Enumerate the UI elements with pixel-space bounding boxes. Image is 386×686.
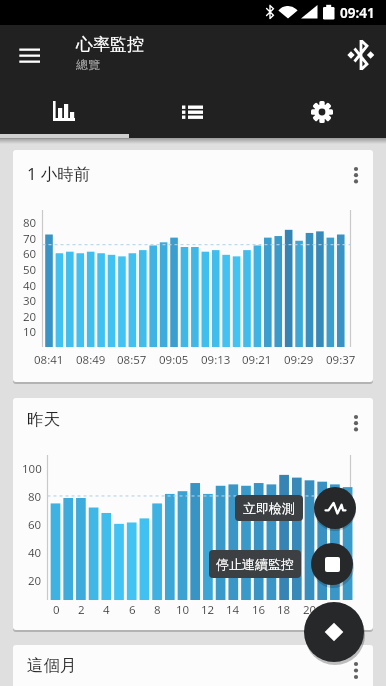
staticText: 14 [226,602,240,616]
button[interactable] [311,543,353,585]
staticText: 40 [23,278,37,292]
staticText: 50 [23,262,37,276]
staticText: 12 [201,602,215,616]
staticText: 停止連續監控 [216,556,294,572]
button[interactable] [0,85,128,138]
button[interactable] [257,85,386,138]
staticText: 4 [103,602,110,616]
staticText: 18 [277,602,291,616]
staticText: 20 [28,573,42,587]
staticText: 60 [28,517,42,531]
staticText: 100 [22,461,42,475]
staticText: 1 小時前 [27,162,91,185]
staticText: 60 [23,246,37,260]
staticText: 40 [28,545,42,559]
button[interactable] [304,602,364,662]
staticText: 6 [129,602,136,616]
staticText: 08:41 [34,352,64,366]
staticText: 80 [28,489,42,503]
button[interactable] [8,44,52,66]
staticText: 16 [252,602,266,616]
staticText: 30 [23,293,37,307]
button[interactable] [344,157,368,187]
staticText: 09:21 [242,352,272,366]
staticText: 08:57 [117,352,147,366]
staticText: 80 [23,215,37,229]
staticText: 這個月 [27,655,77,676]
button[interactable] [340,34,382,76]
staticText: 立即檢測 [243,500,295,516]
staticText: 09:37 [326,352,356,366]
staticText: 8 [154,602,161,616]
button[interactable] [344,405,368,435]
staticText: 20 [23,309,37,323]
staticText: 0 [53,602,60,616]
staticText: 10 [23,324,37,338]
staticText: 10 [176,602,190,616]
staticText: 2 [78,602,85,616]
staticText: 心率監控 [76,34,144,55]
staticText: 09:13 [201,352,231,366]
staticText: 70 [23,231,37,245]
staticText: 09:41 [340,4,375,21]
button[interactable] [314,487,356,529]
button[interactable]: 立即檢測 [235,495,303,521]
staticText: 總覽 [76,57,100,72]
staticText: 22 [328,602,342,616]
staticText: 08:49 [76,352,106,366]
button[interactable]: 停止連續監控 [209,550,301,578]
staticText: 09:05 [159,352,189,366]
staticText: 09:29 [284,352,314,366]
button[interactable] [128,85,257,138]
staticText: 昨天 [27,409,60,430]
staticText: 20 [303,602,317,616]
button[interactable] [344,652,368,682]
